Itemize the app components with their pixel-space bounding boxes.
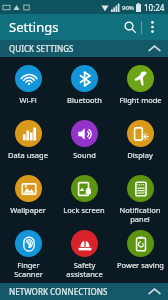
staticText: Bluetooth [67, 95, 102, 105]
staticText: Sound [73, 150, 96, 160]
staticText: Notification panel [119, 205, 161, 224]
button[interactable]: Safety assistance [56, 226, 112, 281]
staticText: Power saving [117, 260, 164, 270]
button[interactable]: Search [119, 16, 141, 38]
button[interactable]: Display [112, 116, 168, 171]
staticText: NETWORK CONNECTIONS [9, 286, 108, 297]
button[interactable]: More options [142, 17, 162, 37]
staticText: 10:24 [144, 2, 165, 13]
button[interactable]: Notification panel [112, 171, 168, 226]
staticText: Flight mode [119, 95, 162, 105]
staticText: Wi-Fi [19, 95, 37, 105]
button[interactable]: Bluetooth [56, 61, 112, 116]
staticText: Display [127, 150, 153, 160]
button[interactable]: Flight mode [112, 61, 168, 116]
staticText: Settings [9, 18, 59, 36]
staticText: Wallpaper [10, 205, 46, 215]
button[interactable]: QUICK SETTINGS [0, 40, 168, 57]
button[interactable]: Power saving [112, 226, 168, 281]
staticText: Safety assistance [66, 260, 103, 279]
button[interactable]: NETWORK CONNECTIONS [0, 283, 168, 300]
button[interactable]: Wi-Fi [0, 61, 56, 116]
staticText: Data usage [8, 150, 48, 160]
staticText: Finger Scanner [14, 260, 43, 279]
staticText: QUICK SETTINGS [9, 43, 74, 54]
button[interactable]: Lock screen [56, 171, 112, 226]
button[interactable]: Data usage [0, 116, 56, 171]
button[interactable]: Sound [56, 116, 112, 171]
button[interactable]: Wallpaper [0, 171, 56, 226]
staticText: 90% [122, 4, 134, 12]
button[interactable]: Finger Scanner [0, 226, 56, 281]
staticText: Lock screen [63, 205, 105, 215]
